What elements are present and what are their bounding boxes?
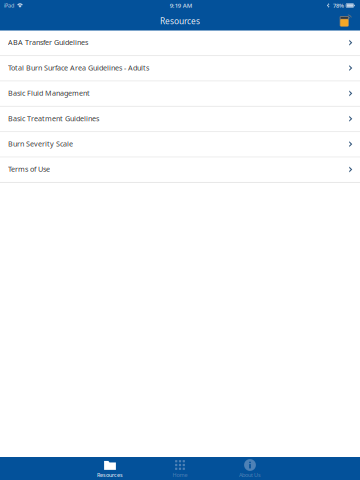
staticText: Home: [172, 471, 187, 479]
staticText: Resources: [97, 471, 123, 479]
staticText: Burn Severity Scale: [8, 139, 73, 149]
staticText: ABA Transfer Guidelines: [8, 37, 88, 47]
button[interactable]: About Us: [215, 457, 285, 480]
staticText: 9:19 AM: [170, 1, 193, 10]
staticText: About Us: [239, 471, 261, 479]
button[interactable]: Terms of Use: [0, 158, 360, 183]
button[interactable]: Burn Severity Scale: [0, 132, 360, 158]
button[interactable]: Basic Treatment Guidelines: [0, 107, 360, 132]
staticText: Total Burn Surface Area Guidelines - Adu…: [8, 63, 149, 72]
staticText: Basic Fluid Management: [8, 88, 90, 98]
staticText: iPad: [4, 2, 14, 9]
staticText: 78%: [333, 2, 344, 9]
button[interactable]: ABA Transfer Guidelines: [0, 31, 360, 56]
staticText: Terms of Use: [8, 164, 50, 174]
button[interactable]: Home: [145, 457, 215, 480]
button[interactable]: Resources: [75, 457, 145, 480]
staticText: Resources: [160, 15, 200, 27]
button[interactable]: AirPrint: [336, 12, 356, 29]
button[interactable]: Basic Fluid Management: [0, 81, 360, 107]
staticText: Basic Treatment Guidelines: [8, 113, 99, 123]
button[interactable]: Total Burn Surface Area Guidelines - Adu…: [0, 56, 360, 82]
